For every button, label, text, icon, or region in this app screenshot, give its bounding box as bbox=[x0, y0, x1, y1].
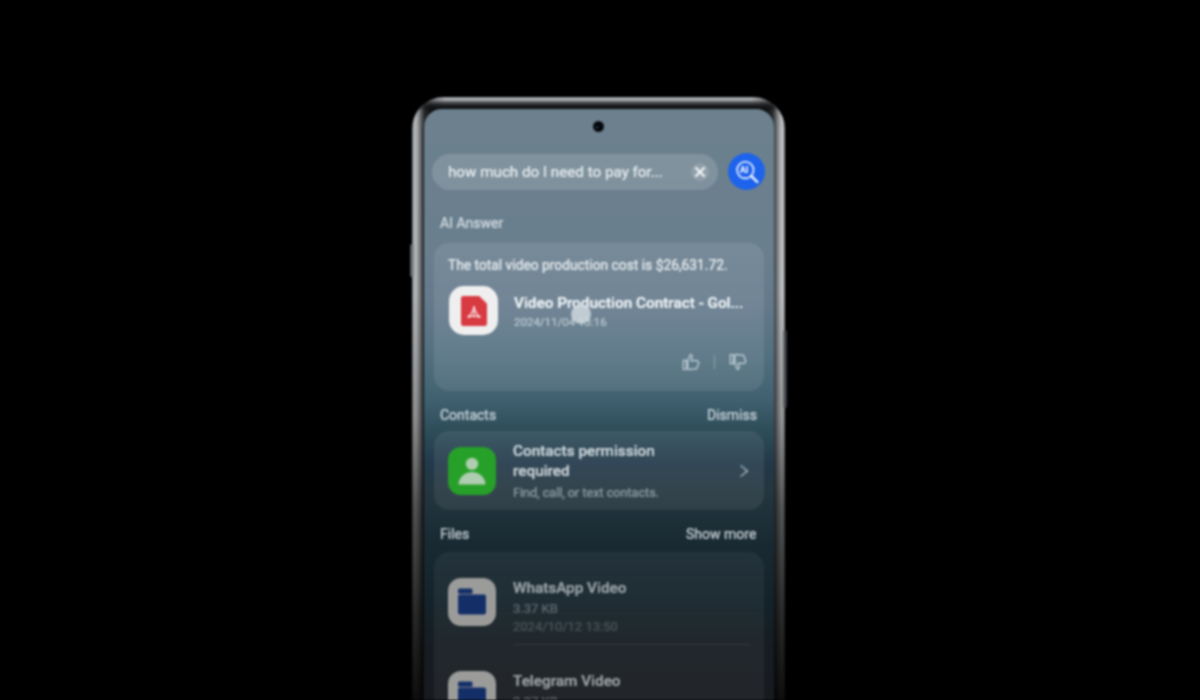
staticText: Dismiss bbox=[707, 407, 757, 423]
staticText: Find, call, or text contacts. bbox=[513, 485, 659, 500]
button[interactable]: Clear query bbox=[691, 163, 709, 181]
staticText: Files bbox=[440, 526, 470, 542]
button[interactable]: Show more bbox=[686, 526, 757, 542]
staticText: Contacts permission required bbox=[513, 442, 671, 480]
staticText: how much do I need to pay for... bbox=[448, 163, 663, 181]
button[interactable]: how much do I need to pay for... bbox=[432, 154, 718, 190]
staticText: 2024/10/12 13:50 bbox=[513, 619, 618, 634]
staticText: 3.37 KB bbox=[513, 694, 558, 700]
button[interactable]: Contacts permission required bbox=[434, 431, 764, 510]
button[interactable]: Like bbox=[680, 351, 702, 373]
button[interactable]: The total video production cost is $26,6… bbox=[434, 243, 764, 391]
staticText: Telegram Video bbox=[513, 672, 621, 690]
button[interactable]: WhatsApp Video bbox=[434, 552, 764, 644]
button[interactable]: Dislike bbox=[727, 351, 749, 373]
staticText: 3.37 KB bbox=[513, 601, 558, 616]
staticText: AI bbox=[740, 165, 749, 175]
button[interactable]: Telegram Video bbox=[434, 645, 764, 700]
staticText: The total video production cost is $26,6… bbox=[448, 257, 728, 273]
staticText: Video Production Contract - Gol... bbox=[514, 294, 744, 312]
staticText: WhatsApp Video bbox=[513, 579, 627, 597]
button[interactable]: AI search bbox=[728, 153, 765, 190]
staticText: Show more bbox=[686, 526, 757, 542]
button[interactable]: Dismiss bbox=[707, 407, 757, 423]
staticText: Contacts bbox=[440, 407, 497, 423]
staticText: AI Answer bbox=[440, 215, 504, 231]
staticText: 2024/11/04 13:16 bbox=[514, 315, 607, 328]
